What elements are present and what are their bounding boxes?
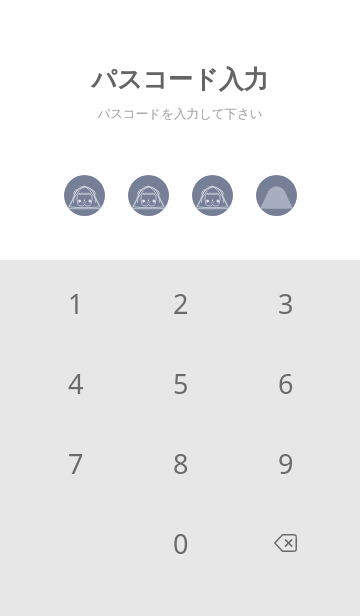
button[interactable]: 1 [23,263,128,343]
staticText: パスコード入力 [91,64,269,95]
button[interactable]: 3 [233,263,338,343]
button[interactable]: 7 [23,423,128,503]
staticText: 9 [278,445,294,482]
button[interactable]: 0 [128,503,233,583]
staticText: 8 [173,445,189,482]
button[interactable]: Backspace [233,503,338,583]
staticText: 5 [173,365,189,402]
staticText: 7 [68,445,84,482]
button[interactable]: 2 [128,263,233,343]
button[interactable]: 6 [233,343,338,423]
staticText: パスコードを入力して下さい [97,106,263,122]
button[interactable]: 8 [128,423,233,503]
staticText: 4 [68,365,84,402]
button[interactable]: 4 [23,343,128,423]
staticText: 6 [278,365,294,402]
staticText: 1 [68,285,84,322]
button[interactable]: 5 [128,343,233,423]
staticText: 2 [173,285,189,322]
button[interactable]: 9 [233,423,338,503]
staticText: 0 [173,525,189,562]
staticText: 3 [278,285,294,322]
